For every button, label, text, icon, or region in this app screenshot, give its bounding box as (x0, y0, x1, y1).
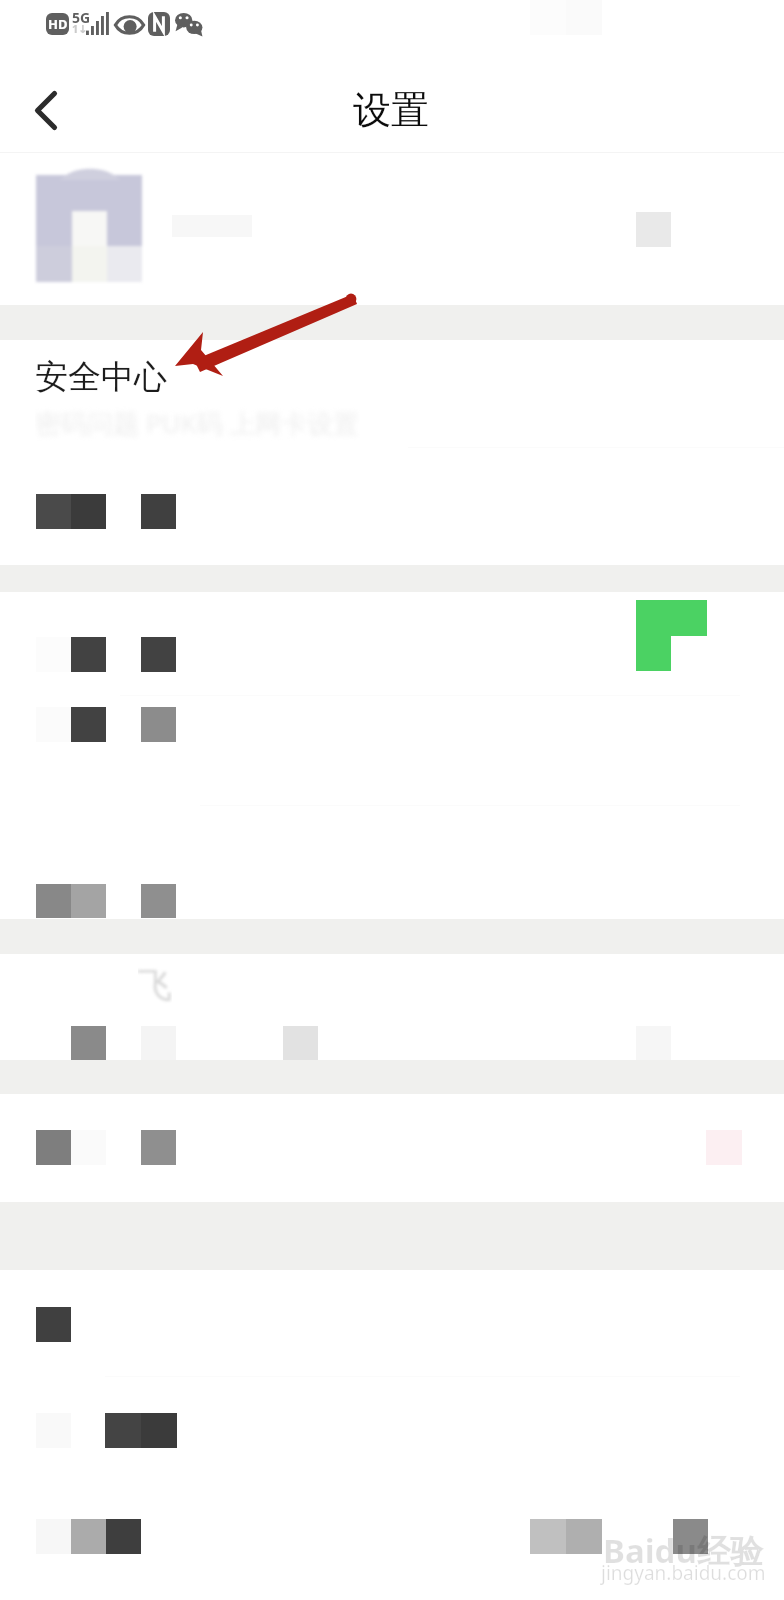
staticText: 5G (72, 8, 91, 27)
button[interactable]: 设置项开关 (0, 592, 784, 697)
button[interactable]: 设置项 (0, 767, 784, 919)
staticText: jingyan.baidu.com (601, 1560, 766, 1586)
button[interactable]: 设置项 (0, 1375, 784, 1480)
staticText: 安全中心 (35, 356, 167, 398)
button[interactable]: 安全中心 (0, 340, 784, 565)
staticText: Baidu经验 (603, 1528, 763, 1573)
staticText: 飞 (138, 964, 172, 1007)
button[interactable]: 开关 (636, 600, 707, 671)
staticText: 1↓ (72, 21, 88, 36)
button[interactable]: 设置项 (0, 954, 784, 1060)
staticText: HD (48, 15, 68, 33)
button[interactable]: 设置项 (0, 1480, 784, 1600)
button[interactable]: 返回 (6, 68, 86, 152)
button[interactable]: 账号头像与资料 (0, 153, 784, 305)
staticText: 设置 (353, 86, 429, 134)
button[interactable]: 设置项 (0, 1270, 784, 1375)
button[interactable]: 设置项 (0, 1094, 784, 1202)
button[interactable]: 设置项 (0, 697, 784, 767)
